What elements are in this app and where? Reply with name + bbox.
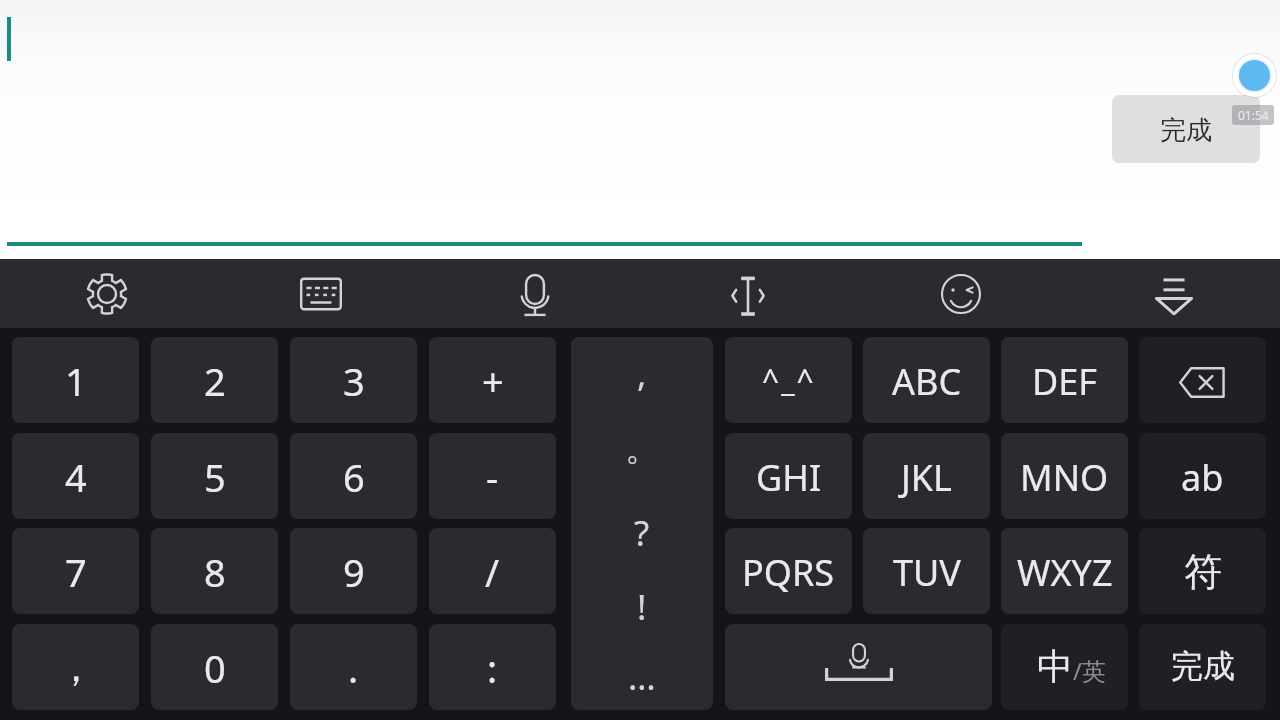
button[interactable]: Move cursor	[641, 259, 854, 328]
staticText: 中	[1037, 644, 1073, 689]
staticText: 4	[65, 451, 87, 503]
button[interactable]: 完成	[1112, 95, 1260, 163]
staticText: ^_^	[762, 359, 816, 400]
staticText: 8	[204, 546, 226, 598]
button[interactable]: Space / voice input	[725, 624, 992, 710]
staticText: /	[485, 546, 500, 598]
button[interactable]: Settings	[0, 259, 214, 328]
button[interactable]: 1	[12, 337, 139, 423]
button[interactable]: 7	[12, 528, 139, 614]
button[interactable]: +	[429, 337, 556, 423]
button[interactable]: Switch keyboard layout	[214, 259, 428, 328]
staticText: 6	[343, 451, 365, 503]
button[interactable]: ab	[1139, 433, 1266, 519]
button[interactable]: Emoji	[854, 259, 1067, 328]
button[interactable]: 符	[1139, 528, 1266, 614]
button[interactable]: PQRS	[725, 528, 852, 614]
button[interactable]: JKL	[863, 433, 990, 519]
staticText: 完成	[1160, 114, 1212, 147]
staticText: 9	[343, 546, 365, 598]
staticText: PQRS	[742, 548, 835, 597]
staticText: +	[482, 355, 504, 407]
staticText: -	[486, 451, 499, 503]
button[interactable]: DEF	[1001, 337, 1128, 423]
staticText: 3	[343, 355, 365, 407]
staticText: WXYZ	[1017, 548, 1113, 597]
staticText: 2	[204, 355, 226, 407]
button[interactable]: .	[290, 624, 417, 710]
button[interactable]: -	[429, 433, 556, 519]
button[interactable]: MNO	[1001, 433, 1128, 519]
staticText: ，	[57, 644, 95, 692]
staticText: ?	[634, 509, 650, 557]
button[interactable]: 4	[12, 433, 139, 519]
staticText: 1	[65, 355, 87, 407]
staticText: DEF	[1032, 357, 1097, 406]
staticText: ab	[1181, 453, 1224, 502]
staticText: 。	[625, 426, 660, 470]
staticText: 01:54	[1238, 107, 1269, 123]
button[interactable]: ,	[571, 337, 713, 710]
staticText: .	[348, 642, 359, 694]
staticText: ABC	[892, 357, 962, 406]
staticText: MNO	[1020, 453, 1109, 502]
button[interactable]: 2	[151, 337, 278, 423]
button[interactable]: 中	[1001, 624, 1128, 710]
staticText: 完成	[1171, 646, 1235, 686]
staticText: GHI	[756, 453, 822, 502]
button[interactable]: Hide keyboard	[1067, 259, 1280, 328]
staticText: TUV	[893, 548, 961, 597]
staticText: !	[637, 583, 647, 631]
staticText: :	[487, 642, 498, 694]
button[interactable]: GHI	[725, 433, 852, 519]
staticText: JKL	[901, 453, 952, 502]
button[interactable]: Backspace	[1139, 337, 1266, 423]
staticText: /英	[1073, 654, 1106, 687]
button[interactable]: WXYZ	[1001, 528, 1128, 614]
button[interactable]: Stop recording	[1232, 53, 1277, 98]
staticText: ,	[637, 350, 647, 398]
button[interactable]: TUV	[863, 528, 990, 614]
button[interactable]: 8	[151, 528, 278, 614]
button[interactable]: 完成	[1139, 624, 1266, 710]
staticText: …	[628, 653, 656, 701]
button[interactable]: :	[429, 624, 556, 710]
staticText: 7	[65, 546, 87, 598]
button[interactable]: 5	[151, 433, 278, 519]
button[interactable]: ABC	[863, 337, 990, 423]
button[interactable]: 6	[290, 433, 417, 519]
button[interactable]: 3	[290, 337, 417, 423]
button[interactable]: 9	[290, 528, 417, 614]
button[interactable]: ^_^	[725, 337, 852, 423]
button[interactable]: Voice input	[428, 259, 641, 328]
staticText: 5	[204, 451, 226, 503]
staticText: 符	[1184, 548, 1222, 596]
button[interactable]: /	[429, 528, 556, 614]
button[interactable]: ，	[12, 624, 139, 710]
button[interactable]: 0	[151, 624, 278, 710]
staticText: 0	[204, 642, 226, 694]
